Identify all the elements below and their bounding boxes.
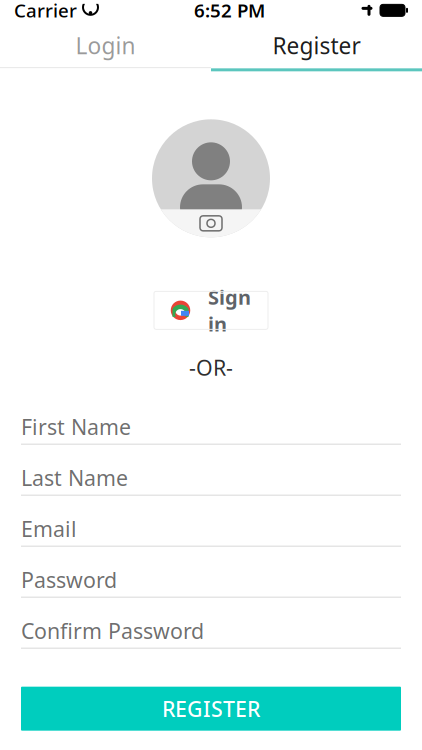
button[interactable]: Sign in (154, 291, 268, 329)
staticText: REGISTER (162, 694, 260, 723)
button[interactable]: Login (0, 23, 211, 67)
button[interactable]: REGISTER (21, 687, 401, 731)
staticText: -OR- (189, 353, 233, 382)
staticText: Carrier (14, 0, 77, 23)
button[interactable]: Change profile photo (152, 119, 270, 237)
staticText: Confirm Password (21, 616, 204, 645)
staticText: Register (272, 30, 360, 60)
staticText: Login (75, 30, 135, 60)
staticText: Last Name (21, 463, 128, 492)
staticText: Sign in (208, 284, 251, 337)
staticText: Email (21, 514, 77, 543)
button[interactable]: Register (211, 23, 422, 67)
staticText: 6:52 PM (194, 0, 265, 23)
staticText: First Name (21, 412, 131, 441)
staticText: Password (21, 565, 117, 594)
